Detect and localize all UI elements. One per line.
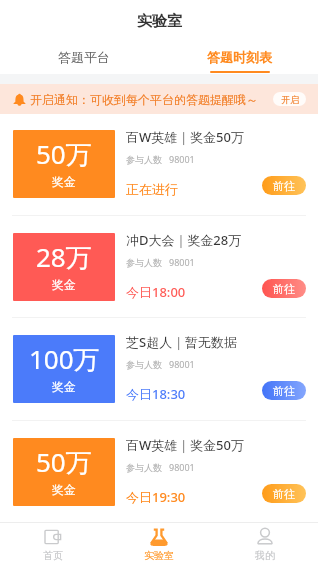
staticText: 参与人数 <box>126 359 162 370</box>
staticText: 正在进行 <box>126 181 178 197</box>
staticText: 奖金 <box>52 277 76 292</box>
button[interactable]: 开启 <box>273 92 306 106</box>
staticText: 98001 <box>169 256 195 268</box>
staticText: 前往 <box>273 487 295 501</box>
button[interactable]: 我的 <box>212 523 318 566</box>
staticText: 奖金 <box>52 379 76 394</box>
staticText: 冲D大会｜奖金28万 <box>126 231 242 249</box>
staticText: 开启通知：可收到每个平台的答题提醒哦～ <box>30 92 258 107</box>
staticText: 我的 <box>255 549 275 562</box>
button[interactable]: 实验室 <box>106 523 212 566</box>
staticText: 28万 <box>36 239 92 275</box>
staticText: 100万 <box>29 341 100 377</box>
staticText: 实验室 <box>144 549 174 562</box>
staticText: 开启 <box>281 94 299 105</box>
button[interactable]: 28万 <box>0 216 318 318</box>
staticText: 98001 <box>169 461 195 473</box>
staticText: 答题平台 <box>58 49 110 65</box>
button[interactable]: 100万 <box>0 318 318 420</box>
staticText: 参与人数 <box>126 257 162 268</box>
staticText: 今日19:30 <box>126 488 186 506</box>
staticText: 答题时刻表 <box>207 49 272 65</box>
button[interactable]: 前往 <box>262 381 306 400</box>
staticText: 今日18:30 <box>126 385 186 403</box>
button[interactable]: 50万 <box>0 421 318 523</box>
staticText: 首页 <box>43 549 63 562</box>
button[interactable]: 前往 <box>262 176 306 195</box>
staticText: 参与人数 <box>126 462 162 473</box>
staticText: 98001 <box>169 153 195 165</box>
button[interactable]: 前往 <box>262 279 306 298</box>
staticText: 50万 <box>36 444 92 480</box>
staticText: 奖金 <box>52 482 76 497</box>
staticText: 实验室 <box>137 12 182 31</box>
staticText: 芝S超人｜暂无数据 <box>126 333 237 351</box>
staticText: 前往 <box>273 179 295 193</box>
staticText: 百W英雄｜奖金50万 <box>126 436 244 454</box>
staticText: 前往 <box>273 384 295 398</box>
button[interactable]: 答题平台 <box>0 42 168 74</box>
button[interactable]: 50万 <box>0 113 318 215</box>
button[interactable]: 答题时刻表 <box>168 42 311 74</box>
button[interactable]: 前往 <box>262 484 306 503</box>
staticText: 参与人数 <box>126 154 162 165</box>
staticText: 奖金 <box>52 174 76 189</box>
staticText: 98001 <box>169 358 195 370</box>
button[interactable]: 首页 <box>0 523 106 566</box>
staticText: 50万 <box>36 136 92 172</box>
staticText: 百W英雄｜奖金50万 <box>126 128 244 146</box>
staticText: 今日18:00 <box>126 283 186 301</box>
staticText: 前往 <box>273 282 295 296</box>
